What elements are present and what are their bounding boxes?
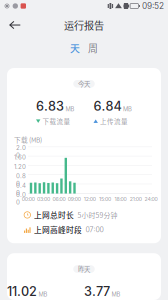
button[interactable]: 天 [68, 42, 81, 54]
staticText: 18:00 [114, 196, 126, 202]
staticText: 00:00 [22, 196, 35, 202]
staticText: MB [38, 291, 47, 298]
staticText: 天 [70, 41, 80, 55]
staticText: 1.20 [14, 163, 26, 170]
staticText: 上网总时长 [34, 209, 74, 220]
staticText: 0.40 [16, 182, 26, 196]
staticText: 上网高峰时段 [34, 224, 82, 235]
staticText: 06:00 [52, 196, 65, 202]
staticText: 09:52 [142, 1, 164, 11]
staticText: 下载流量 [43, 116, 71, 126]
staticText: 运行报告 [64, 18, 104, 32]
staticText: 1.60 [14, 153, 26, 161]
staticText: 0.80 [16, 172, 26, 187]
staticText: 12:00 [84, 196, 96, 202]
staticText: 24:00 [145, 196, 158, 202]
staticText: 6.83 [36, 99, 64, 114]
staticText: 昨天 [78, 264, 90, 274]
staticText: 5小时59分钟 [78, 210, 118, 220]
staticText: MB [123, 106, 132, 113]
staticText: 6.84 [93, 99, 121, 114]
staticText: 周 [88, 41, 98, 55]
staticText: 上传流量 [100, 116, 128, 126]
staticText: 11.02 [7, 284, 37, 299]
staticText: 下载 (MB) [14, 135, 42, 145]
staticText: MB [65, 106, 74, 113]
staticText: 09:00 [68, 196, 81, 202]
staticText: 15:00 [99, 196, 111, 202]
staticText: 0.00 [16, 191, 26, 206]
staticText: 03:00 [37, 196, 50, 202]
staticText: 2.00 [16, 144, 26, 159]
staticText: 21:00 [130, 196, 142, 202]
staticText: MB [111, 291, 120, 298]
staticText: 3.77 [84, 284, 110, 299]
staticText: 今天 [78, 79, 90, 88]
staticText: 07:00 [86, 225, 104, 234]
button[interactable]: Back [4, 16, 26, 34]
button[interactable]: 周 [86, 42, 99, 54]
